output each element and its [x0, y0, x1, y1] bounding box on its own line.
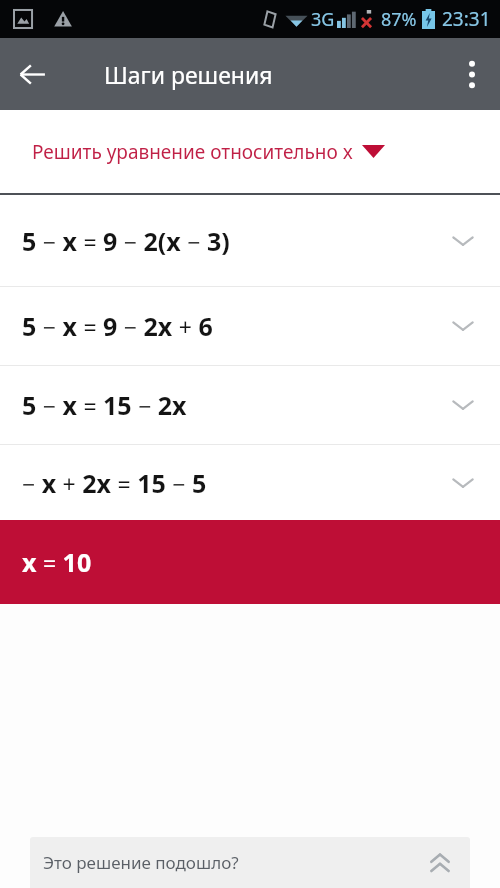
- button[interactable]: Это решение подошло?: [30, 837, 470, 888]
- button[interactable]: Решить уравнение относительно x: [0, 110, 500, 193]
- staticText: − x + 2x = 15 − 5: [22, 466, 207, 500]
- button[interactable]: Back: [0, 38, 64, 110]
- staticText: Решить уравнение относительно x: [32, 139, 353, 165]
- staticText: 5 − x = 9 − 2x + 6: [22, 309, 213, 343]
- staticText: x = 10: [22, 545, 92, 579]
- staticText: Это решение подошло?: [43, 851, 239, 874]
- button[interactable]: − x + 2x = 15 − 5: [0, 445, 500, 520]
- staticText: 5 − x = 9 − 2(x − 3): [22, 224, 230, 258]
- button[interactable]: x = 10: [0, 520, 500, 604]
- button[interactable]: 5 − x = 15 − 2x: [0, 366, 500, 444]
- staticText: 87%: [381, 7, 417, 32]
- staticText: Шаги решения: [104, 59, 273, 90]
- other: Expand: [428, 853, 452, 873]
- staticText: 23:31: [442, 6, 491, 32]
- staticText: 3G: [311, 7, 335, 32]
- button[interactable]: More options: [444, 38, 500, 110]
- button[interactable]: 5 − x = 9 − 2(x − 3): [0, 195, 500, 286]
- staticText: 5 − x = 15 − 2x: [22, 388, 187, 422]
- button[interactable]: 5 − x = 9 − 2x + 6: [0, 287, 500, 365]
